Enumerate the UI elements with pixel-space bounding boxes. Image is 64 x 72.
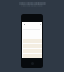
staticText: Learn About Meditation xyxy=(19,1,46,4)
button[interactable]: Back xyxy=(23,23,25,25)
staticText: Calm the mind, body xyxy=(21,4,43,7)
staticText: Calm the mind, body xyxy=(21,5,43,8)
button[interactable]: More options xyxy=(39,23,41,25)
staticText: Learn About Meditation xyxy=(19,2,46,5)
staticText: Calm the mind, body xyxy=(21,3,43,6)
staticText: Learn About Meditation xyxy=(19,0,46,3)
